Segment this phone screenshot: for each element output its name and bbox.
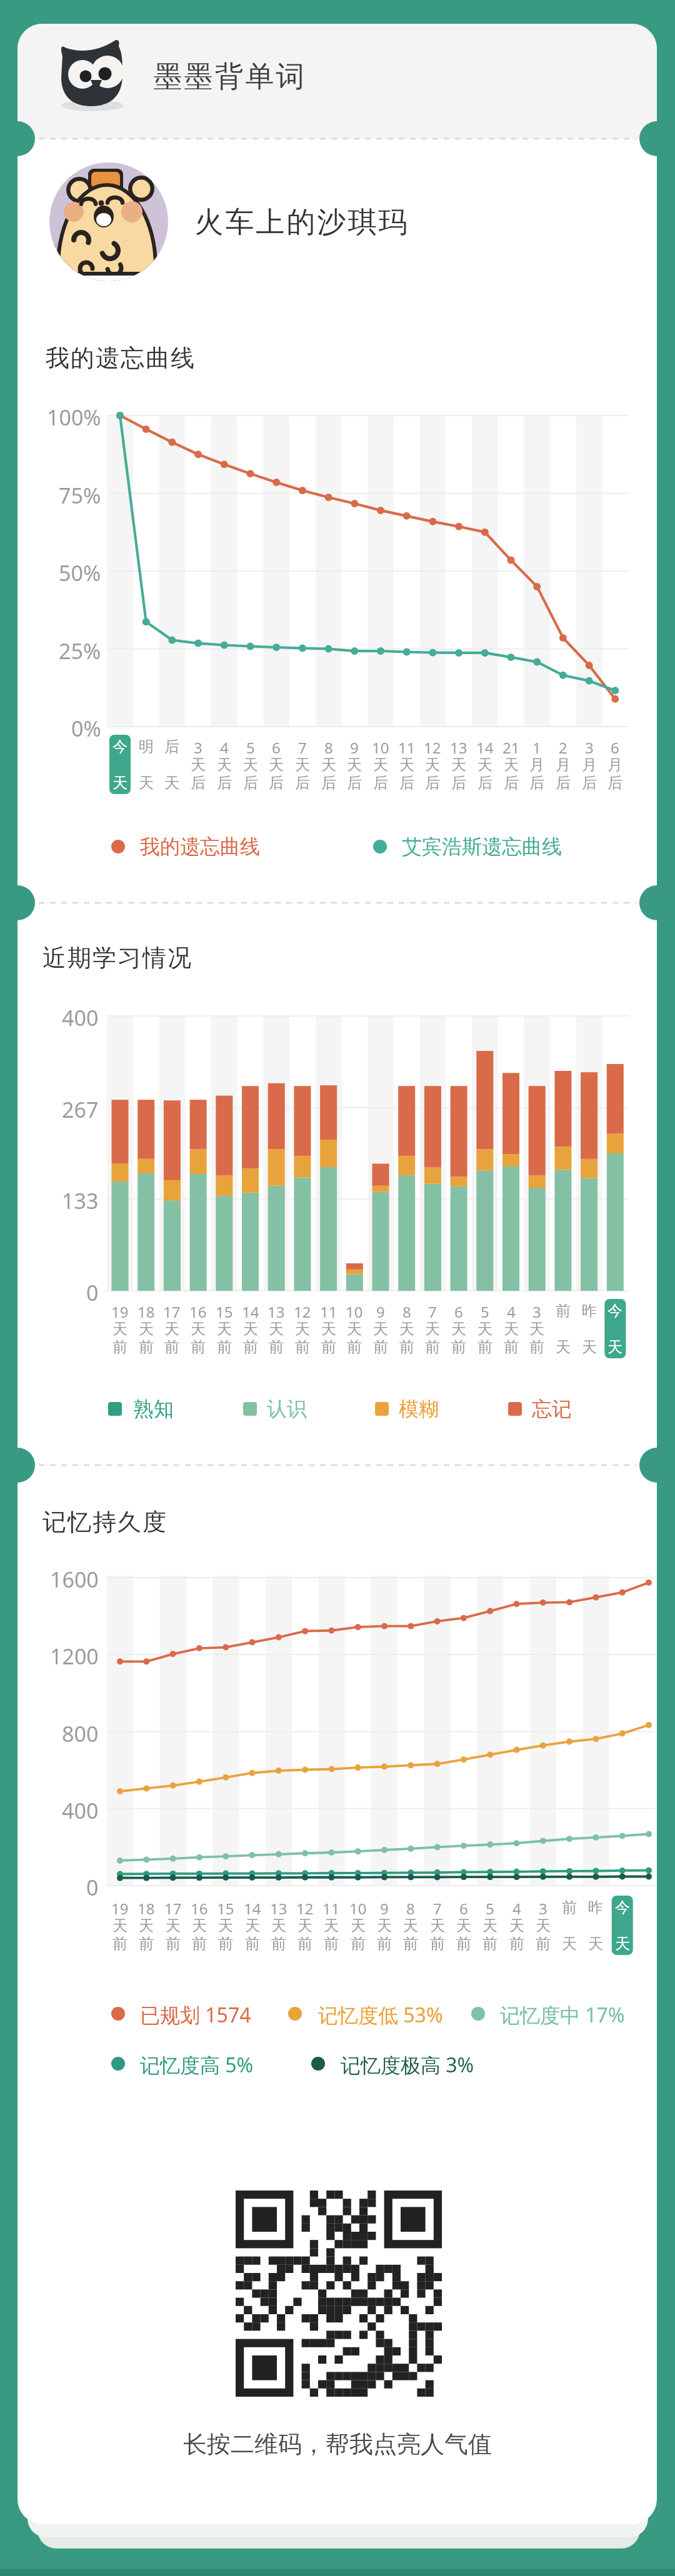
staticText: 0% bbox=[71, 714, 101, 739]
staticText: 火车上的沙琪玛 bbox=[194, 204, 408, 241]
staticText: 月 bbox=[529, 755, 544, 773]
staticText: 4 bbox=[512, 1898, 521, 1916]
staticText: 天 bbox=[607, 1338, 622, 1355]
staticText: 已规划 1574 bbox=[140, 2001, 251, 2026]
staticText: 50% bbox=[59, 559, 101, 584]
staticText: 天 bbox=[425, 755, 440, 773]
staticText: 18 bbox=[137, 1898, 155, 1916]
staticText: 4 bbox=[220, 737, 229, 755]
staticText: 后 bbox=[243, 773, 258, 791]
staticText: 前 bbox=[139, 1934, 154, 1952]
staticText: 前 bbox=[504, 1338, 519, 1355]
staticText: 9 bbox=[350, 737, 359, 755]
staticText: 6 bbox=[611, 737, 619, 755]
staticText: 前 bbox=[482, 1934, 497, 1952]
staticText: 天 bbox=[451, 1320, 466, 1337]
staticText: 前 bbox=[536, 1934, 551, 1952]
staticText: 前 bbox=[509, 1934, 524, 1952]
staticText: 8 bbox=[324, 737, 333, 755]
staticText: 天 bbox=[351, 1916, 366, 1934]
staticText: 14 bbox=[242, 1301, 259, 1319]
staticText: 5 bbox=[481, 1301, 489, 1319]
staticText: 3 bbox=[532, 1301, 541, 1319]
staticText: 天 bbox=[403, 1916, 418, 1934]
staticText: 天 bbox=[509, 1916, 524, 1934]
staticText: 天 bbox=[112, 1320, 127, 1337]
staticText: 后 bbox=[191, 773, 206, 791]
staticText: 记忆持久度 bbox=[42, 1507, 167, 1537]
staticText: 前 bbox=[297, 1934, 312, 1952]
staticText: 前 bbox=[377, 1934, 392, 1952]
staticText: 8 bbox=[402, 1301, 411, 1319]
staticText: 月 bbox=[607, 755, 622, 773]
staticText: 后 bbox=[164, 737, 179, 755]
staticText: 前 bbox=[321, 1338, 336, 1355]
staticText: 前 bbox=[351, 1934, 366, 1952]
staticText: 11 bbox=[322, 1898, 340, 1916]
staticText: 天 bbox=[556, 1338, 571, 1355]
staticText: 今 bbox=[615, 1898, 630, 1916]
staticText: 后 bbox=[295, 773, 310, 791]
staticText: 12 bbox=[424, 737, 441, 755]
staticText: 天 bbox=[482, 1916, 497, 1934]
staticText: 后 bbox=[347, 773, 362, 791]
staticText: 今 bbox=[607, 1301, 622, 1319]
staticText: 后 bbox=[373, 773, 388, 791]
staticText: 忘记 bbox=[532, 1396, 572, 1421]
staticText: 后 bbox=[269, 773, 284, 791]
staticText: 11 bbox=[320, 1301, 337, 1319]
staticText: 15 bbox=[216, 1301, 233, 1319]
staticText: 天 bbox=[321, 1320, 336, 1337]
staticText: 天 bbox=[347, 755, 362, 773]
staticText: 明 bbox=[139, 737, 154, 755]
staticText: 天 bbox=[430, 1916, 445, 1934]
staticText: 天 bbox=[269, 1320, 284, 1337]
staticText: 天 bbox=[139, 1916, 154, 1934]
staticText: 19 bbox=[111, 1301, 129, 1319]
staticText: 后 bbox=[217, 773, 232, 791]
staticText: 400 bbox=[62, 1003, 99, 1028]
staticText: 3 bbox=[585, 737, 594, 755]
staticText: 天 bbox=[562, 1934, 577, 1952]
staticText: 天 bbox=[529, 1320, 544, 1337]
staticText: 后 bbox=[477, 773, 492, 791]
staticText: 267 bbox=[62, 1095, 99, 1120]
staticText: 前 bbox=[456, 1934, 471, 1952]
staticText: 月 bbox=[556, 755, 571, 773]
staticText: 天 bbox=[377, 1916, 392, 1934]
staticText: 8 bbox=[406, 1898, 415, 1916]
button[interactable] bbox=[236, 2191, 442, 2397]
staticText: 天 bbox=[425, 1320, 440, 1337]
staticText: 前 bbox=[399, 1338, 414, 1355]
staticText: 1600 bbox=[50, 1565, 99, 1590]
staticText: 熟知 bbox=[134, 1396, 174, 1421]
staticText: 前 bbox=[562, 1898, 577, 1916]
staticText: 天 bbox=[451, 755, 466, 773]
staticText: 11 bbox=[398, 737, 416, 755]
staticText: 天 bbox=[615, 1934, 630, 1952]
staticText: 75% bbox=[59, 481, 101, 506]
staticText: 天 bbox=[373, 1320, 388, 1337]
staticText: 模糊 bbox=[399, 1396, 439, 1421]
staticText: 天 bbox=[164, 773, 179, 791]
staticText: 17 bbox=[164, 1898, 182, 1916]
staticText: 前 bbox=[112, 1934, 127, 1952]
staticText: 天 bbox=[112, 773, 127, 791]
staticText: 天 bbox=[456, 1916, 471, 1934]
staticText: 21 bbox=[502, 737, 520, 755]
staticText: 100% bbox=[47, 403, 101, 428]
staticText: 前 bbox=[324, 1934, 339, 1952]
staticText: 前 bbox=[192, 1934, 207, 1952]
staticText: 1200 bbox=[50, 1642, 99, 1667]
staticText: 天 bbox=[582, 1338, 597, 1355]
staticText: 天 bbox=[588, 1934, 603, 1952]
staticText: 天 bbox=[139, 1320, 154, 1337]
staticText: 前 bbox=[243, 1338, 258, 1355]
staticText: 前 bbox=[112, 1338, 127, 1355]
staticText: 前 bbox=[218, 1934, 233, 1952]
staticText: 天 bbox=[166, 1916, 181, 1934]
staticText: 后 bbox=[321, 773, 336, 791]
staticText: 6 bbox=[454, 1301, 463, 1319]
staticText: 后 bbox=[529, 773, 544, 791]
staticText: 后 bbox=[607, 773, 622, 791]
